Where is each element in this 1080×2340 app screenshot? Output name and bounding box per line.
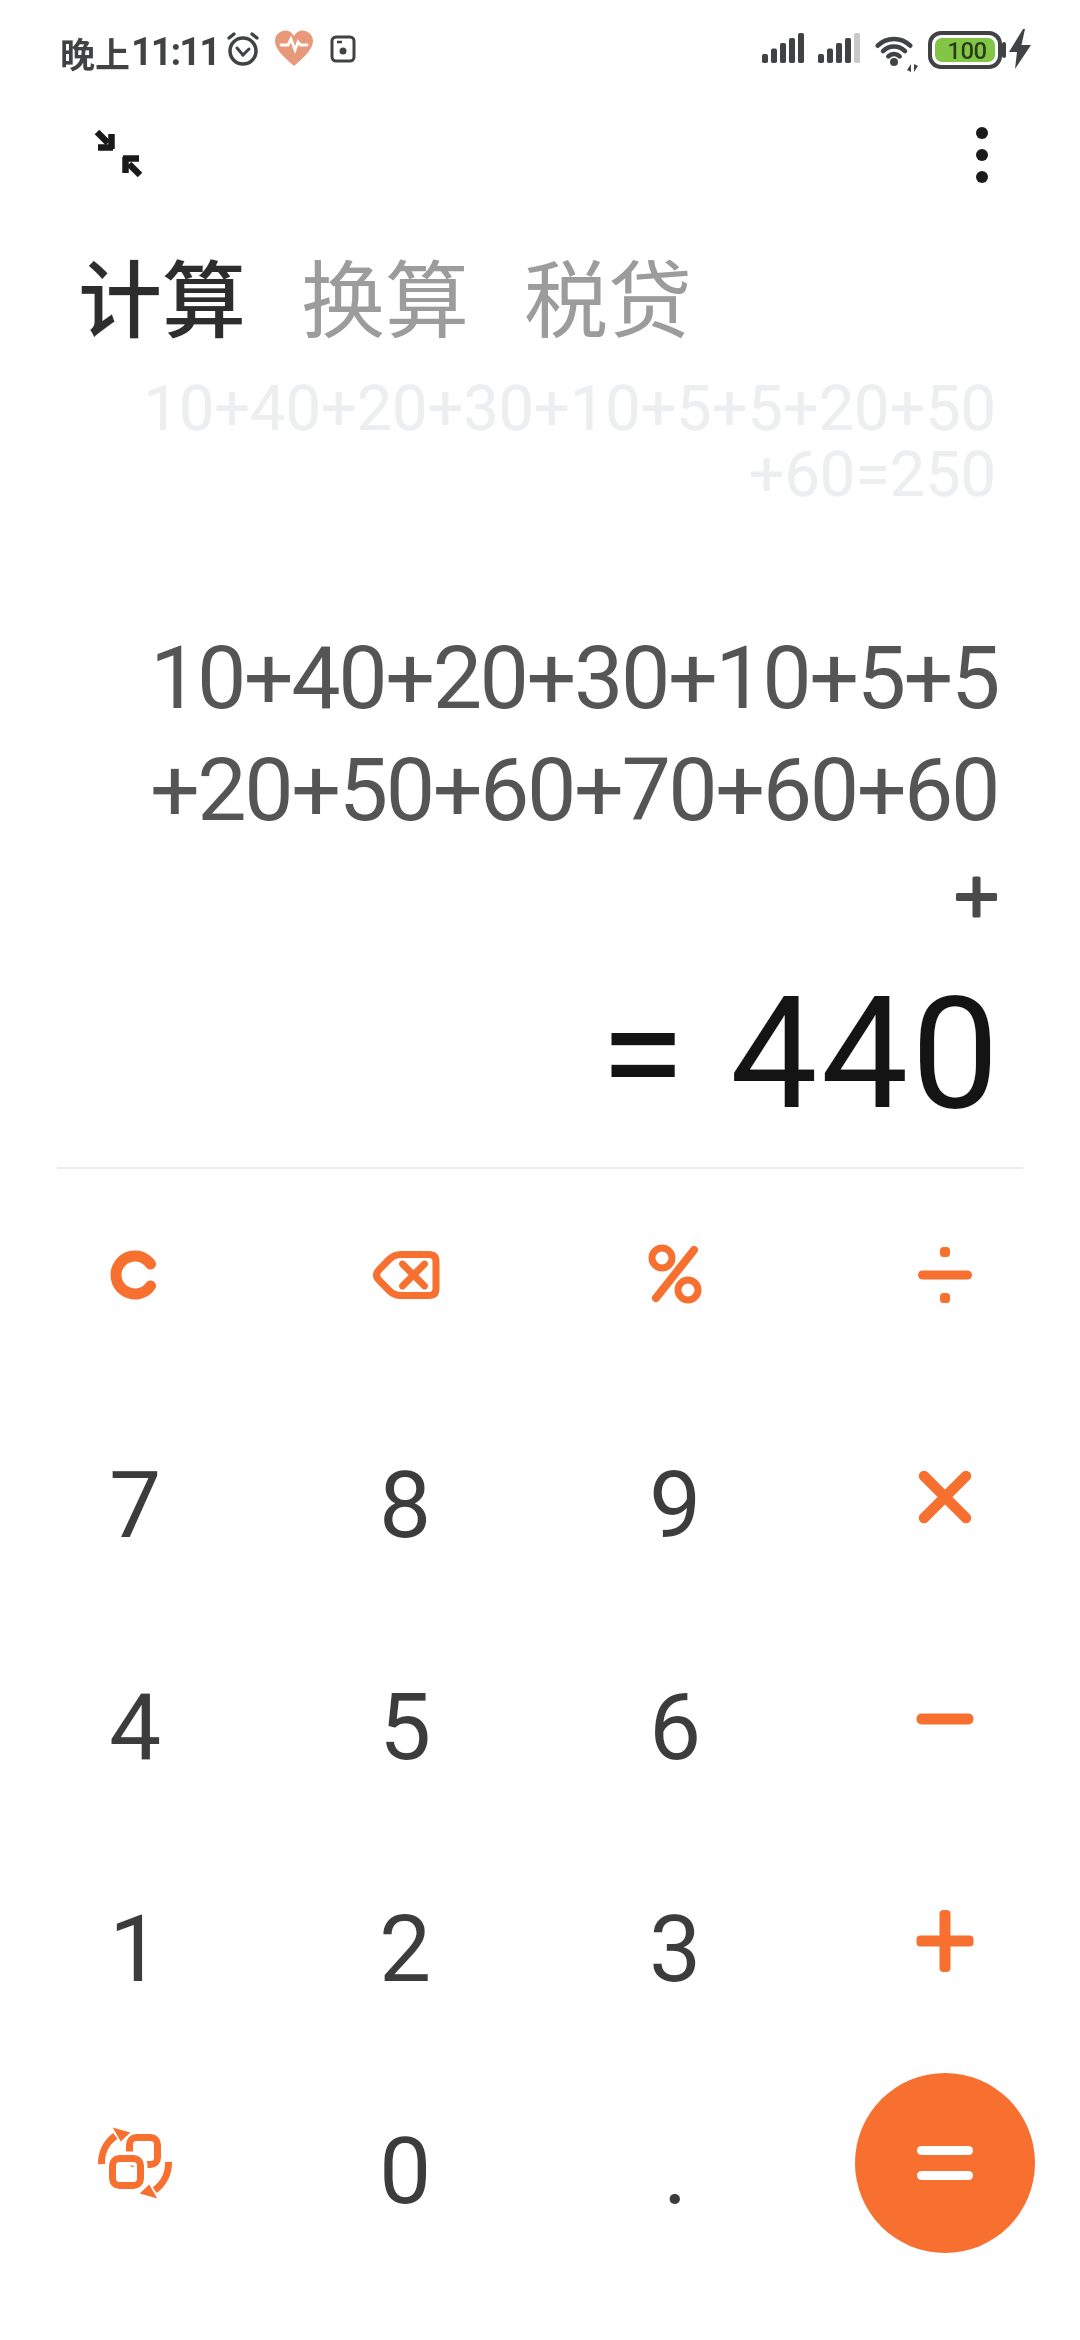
staticText: 2 — [379, 1895, 432, 2004]
button[interactable]: 2 — [270, 1830, 540, 2052]
button[interactable] — [947, 114, 1017, 204]
button[interactable] — [810, 1608, 1080, 1830]
button[interactable] — [855, 2073, 1035, 2253]
button[interactable] — [810, 1164, 1080, 1386]
button[interactable]: 1 — [0, 1830, 270, 2052]
button[interactable]: 8 — [270, 1386, 540, 1608]
button[interactable]: 4 — [0, 1608, 270, 1830]
button[interactable]: 6 — [540, 1608, 810, 1830]
button[interactable] — [270, 1164, 540, 1386]
button[interactable]: 5 — [270, 1608, 540, 1830]
button[interactable] — [0, 2052, 270, 2274]
staticText: 10+40+20+30+10+5+5 +20+50+60+70+60+60 — [0, 626, 998, 841]
button[interactable] — [0, 1164, 270, 1386]
button[interactable]: 税贷 — [524, 234, 693, 356]
button[interactable]: 换算 — [301, 234, 470, 356]
staticText: 9 — [649, 1451, 702, 1560]
staticText: 11:11 — [131, 30, 219, 75]
button[interactable]: 0 — [270, 2052, 540, 2274]
staticText: 1 — [109, 1895, 162, 2004]
button[interactable]: 7 — [0, 1386, 270, 1608]
button[interactable]: . — [540, 2052, 810, 2274]
staticText: 晚上 — [60, 27, 131, 78]
staticText: 8 — [379, 1451, 432, 1560]
staticText: 10+40+20+30+10+5+5+20+50 +60=250 — [0, 372, 996, 512]
button[interactable] — [810, 1386, 1080, 1608]
button[interactable] — [540, 1164, 810, 1386]
staticText: 5 — [379, 1673, 432, 1782]
staticText: = 440 — [0, 962, 1002, 1145]
staticText: 7 — [109, 1451, 162, 1560]
button[interactable] — [80, 114, 160, 194]
staticText: 4 — [109, 1673, 162, 1782]
staticText: 100 — [936, 37, 998, 65]
staticText: . — [663, 2117, 688, 2226]
staticText: 3 — [649, 1895, 702, 2004]
button[interactable]: 计算 — [78, 234, 247, 356]
button[interactable] — [810, 1830, 1080, 2052]
button[interactable]: 9 — [540, 1386, 810, 1608]
staticText: 0 — [379, 2117, 432, 2226]
button[interactable]: 3 — [540, 1830, 810, 2052]
staticText: 6 — [649, 1673, 702, 1782]
